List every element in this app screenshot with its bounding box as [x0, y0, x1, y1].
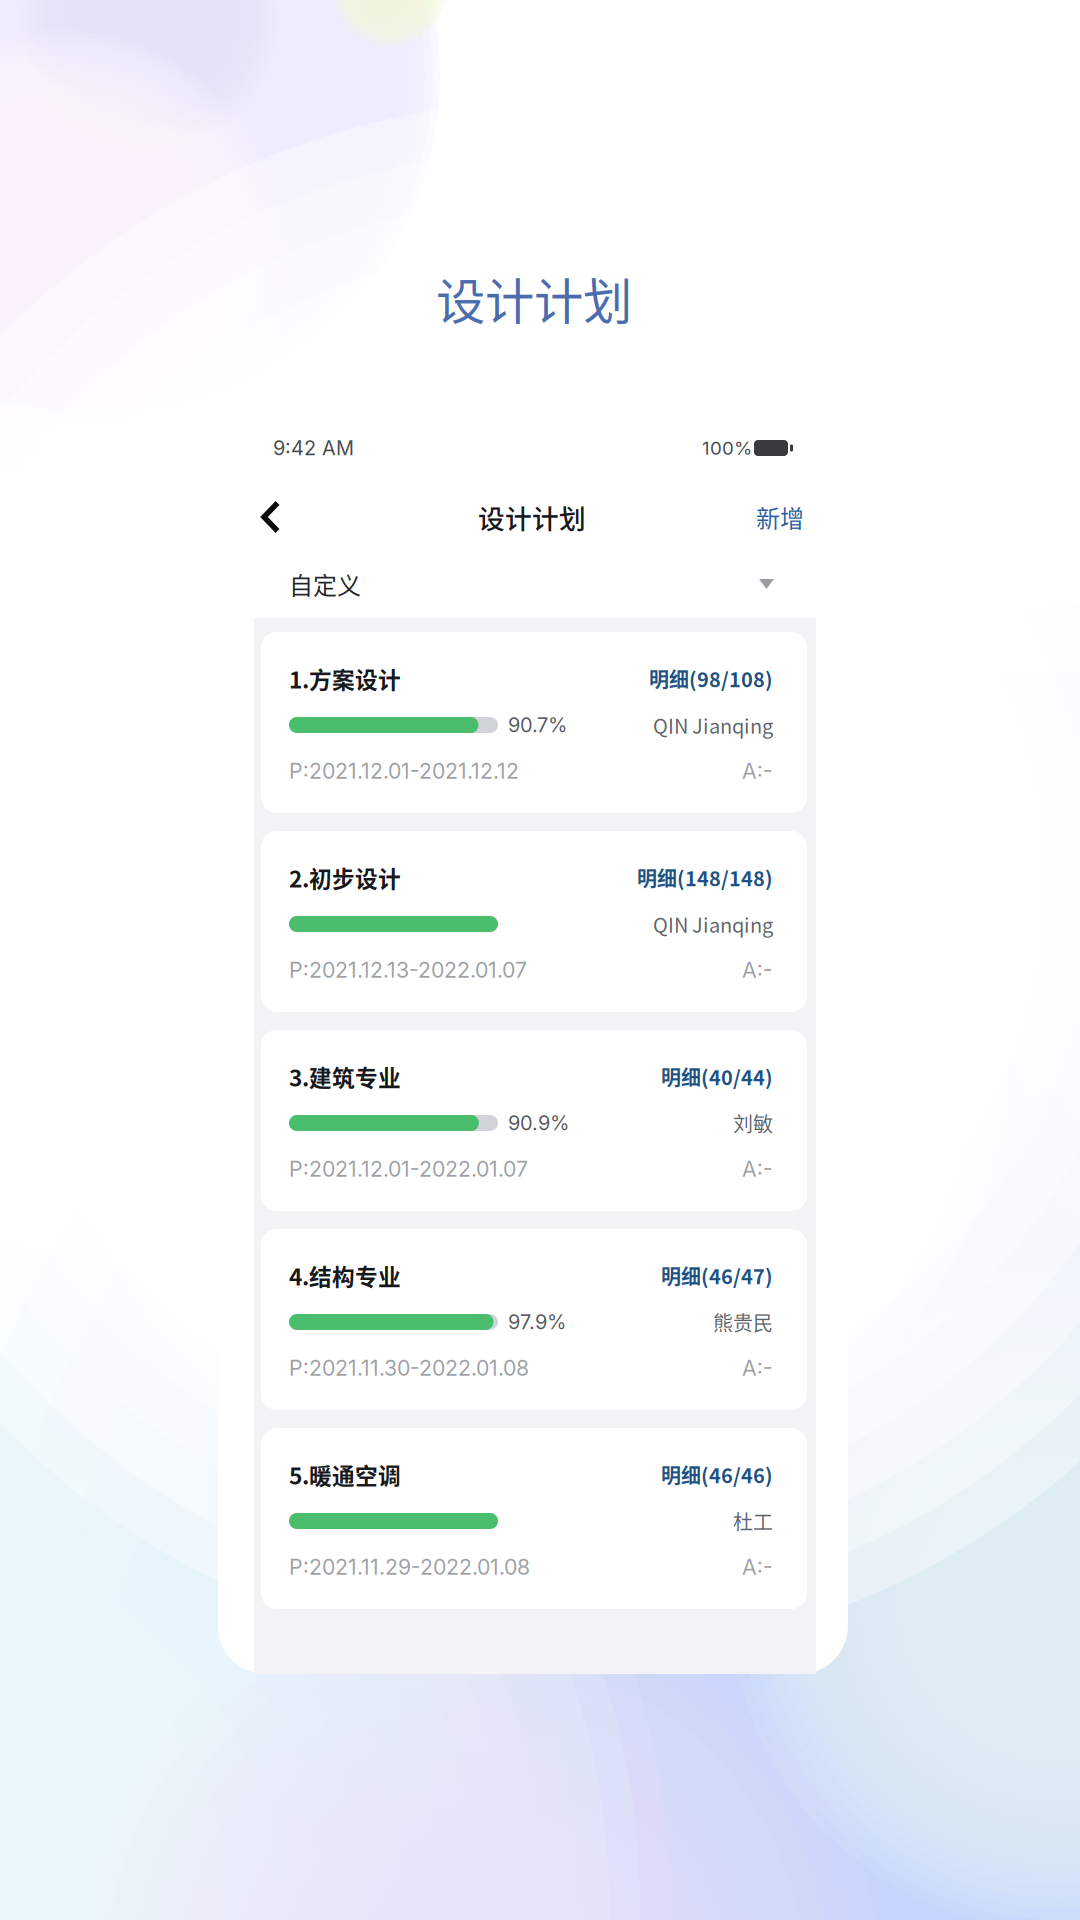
staticText: 设计计划: [436, 262, 632, 334]
button[interactable]: 自定义: [289, 554, 774, 614]
staticText: 5.暖通空调: [289, 1458, 401, 1491]
staticText: A:-: [742, 1156, 773, 1182]
staticText: 97.9%: [508, 1310, 566, 1334]
staticText: 熊贵民: [713, 1307, 773, 1336]
staticText: P:2021.11.29-2022.01.08: [289, 1554, 530, 1580]
button[interactable]: 5.暖通空调: [261, 1428, 807, 1609]
staticText: P:2021.12.01-2022.01.07: [289, 1156, 528, 1182]
staticText: 明细(40/44): [661, 1062, 773, 1091]
staticText: P:2021.12.01-2021.12.12: [289, 758, 519, 784]
staticText: 明细(46/47): [661, 1261, 773, 1290]
staticText: 明细(148/148): [637, 863, 773, 892]
button[interactable]: 4.结构专业: [261, 1229, 807, 1410]
staticText: 3.建筑专业: [289, 1060, 401, 1093]
staticText: A:-: [742, 1355, 773, 1381]
staticText: A:-: [742, 957, 773, 983]
staticText: 杜工: [733, 1506, 773, 1535]
button[interactable]: 新增: [748, 492, 812, 542]
staticText: 明细(46/46): [661, 1460, 773, 1489]
staticText: 1.方案设计: [289, 662, 401, 695]
staticText: 自定义: [289, 567, 361, 601]
staticText: QIN Jianqing: [653, 710, 773, 739]
staticText: 明细(98/108): [649, 664, 773, 693]
staticText: 4.结构专业: [289, 1259, 401, 1292]
staticText: P:2021.12.13-2022.01.07: [289, 957, 527, 983]
staticText: 9:42 AM: [273, 436, 354, 460]
button[interactable]: 3.建筑专业: [261, 1030, 807, 1211]
button[interactable]: 1.方案设计: [261, 632, 807, 813]
staticText: A:-: [742, 1554, 773, 1580]
staticText: A:-: [742, 758, 773, 784]
staticText: P:2021.11.30-2022.01.08: [289, 1355, 529, 1381]
staticText: 100%: [702, 437, 752, 459]
staticText: 90.7%: [508, 713, 567, 737]
button[interactable]: Back: [251, 490, 291, 544]
staticText: QIN Jianqing: [653, 909, 773, 938]
staticText: 2.初步设计: [289, 861, 401, 894]
staticText: 新增: [756, 500, 804, 534]
staticText: 90.9%: [508, 1111, 569, 1135]
staticText: 刘敏: [733, 1108, 773, 1137]
staticText: 设计计划: [478, 498, 586, 536]
button[interactable]: 2.初步设计: [261, 831, 807, 1012]
